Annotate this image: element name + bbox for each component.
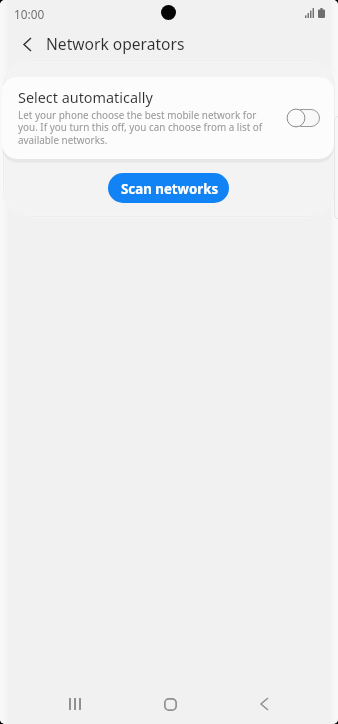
- staticText: Let your phone choose the best mobile ne…: [18, 108, 270, 147]
- staticText: 10:00: [14, 6, 45, 22]
- button[interactable]: Select automatically: [2, 77, 334, 159]
- button[interactable]: Scan networks: [108, 173, 229, 203]
- button[interactable]: Back: [243, 684, 285, 724]
- button[interactable]: Select automatically toggle: [287, 109, 320, 127]
- staticText: Network operators: [46, 33, 185, 54]
- button[interactable]: Recent apps: [54, 684, 96, 724]
- staticText: Scan networks: [121, 180, 219, 198]
- staticText: Select automatically: [18, 88, 153, 108]
- button[interactable]: Home: [149, 684, 191, 724]
- button[interactable]: Navigate up: [7, 27, 47, 61]
